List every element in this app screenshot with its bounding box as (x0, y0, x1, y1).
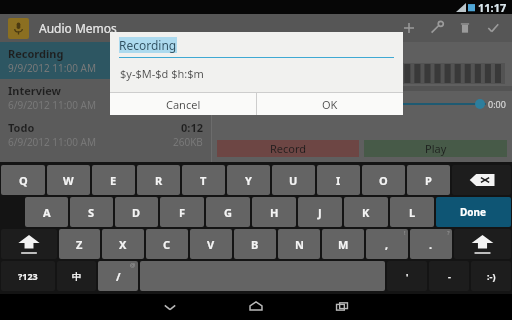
staticText: O (379, 173, 388, 188)
staticText: ' (406, 270, 409, 282)
button[interactable]: Home (243, 294, 269, 320)
button[interactable]: / (98, 261, 138, 291)
button[interactable]: Seek (218, 97, 485, 111)
button[interactable]: Delete (451, 14, 479, 42)
staticText: Q (19, 173, 28, 188)
staticText: V (207, 237, 215, 252)
button[interactable]: Accept (479, 14, 507, 42)
staticText: B (251, 237, 259, 252)
staticText: 9/9/2012 11:00 AM (8, 61, 96, 75)
button[interactable]: Record (217, 140, 359, 157)
button[interactable]: D (115, 197, 158, 227)
staticText: . (429, 237, 433, 252)
button[interactable]: Q (1, 165, 45, 195)
staticText: X (119, 237, 127, 252)
button[interactable]: T (182, 165, 225, 195)
staticText: I (336, 173, 341, 188)
staticText: 6/9/2012 11:00 AM (8, 135, 96, 149)
button[interactable]: . (410, 229, 452, 259)
button[interactable]: Hide keyboard (157, 294, 183, 320)
button[interactable]: P (407, 165, 450, 195)
staticText: ! (404, 229, 406, 237)
button[interactable]: Play (364, 140, 507, 157)
staticText: :-) (487, 270, 496, 282)
staticText: G (224, 205, 232, 220)
staticText: Play (425, 141, 447, 156)
staticText: Y (245, 173, 252, 188)
button[interactable]: J (298, 197, 342, 227)
staticText: 11:17 (478, 0, 507, 14)
button[interactable]: H (252, 197, 296, 227)
staticText: P (425, 173, 432, 188)
button[interactable]: N (278, 229, 320, 259)
staticText: 260KB (173, 135, 203, 149)
button[interactable]: Z (59, 229, 100, 259)
button[interactable]: OK (257, 93, 403, 115)
button[interactable]: E (92, 165, 135, 195)
staticText: U (289, 173, 298, 188)
staticText: 中 (72, 271, 81, 282)
staticText: J (318, 205, 322, 220)
button[interactable]: M (322, 229, 364, 259)
button[interactable]: O (362, 165, 405, 195)
button[interactable]: - (429, 261, 469, 291)
staticText: H (270, 205, 279, 220)
button[interactable]: F (160, 197, 204, 227)
button[interactable]: L (390, 197, 434, 227)
button[interactable]: App icon (8, 18, 29, 39)
button[interactable]: W (47, 165, 90, 195)
staticText: Record (270, 141, 307, 156)
button[interactable]: Y (227, 165, 270, 195)
staticText: Z (76, 237, 83, 252)
button[interactable]: , (366, 229, 408, 259)
button[interactable]: Add (395, 14, 423, 42)
staticText: Audio Memos (39, 20, 117, 36)
staticText: M (338, 237, 349, 252)
button[interactable]: Done (436, 197, 511, 227)
staticText: F (179, 205, 186, 220)
button[interactable]: ?123 (1, 261, 55, 291)
staticText: 6/9/2012 11:00 AM (8, 98, 96, 112)
staticText: N (295, 237, 304, 252)
button[interactable]: :-) (471, 261, 511, 291)
staticText: @ (130, 261, 136, 269)
button[interactable]: B (234, 229, 276, 259)
staticText: K (362, 205, 370, 220)
staticText: Recording (8, 46, 64, 61)
staticText: Todo (8, 120, 35, 135)
staticText: Recording (119, 37, 177, 53)
button[interactable]: C (146, 229, 188, 259)
button[interactable]: Cancel (110, 93, 256, 115)
staticText: - (448, 270, 451, 282)
staticText: S (88, 205, 95, 220)
button[interactable]: 中 (57, 261, 96, 291)
staticText: Interview (8, 83, 62, 98)
button[interactable]: Shift (454, 229, 511, 259)
staticText: L (409, 205, 416, 220)
button[interactable]: Settings (423, 14, 451, 42)
staticText: / (116, 269, 121, 284)
button[interactable]: Recents (329, 294, 355, 320)
button[interactable]: Backspace (452, 165, 511, 195)
staticText: D (132, 205, 141, 220)
button[interactable]: ' (387, 261, 427, 291)
staticText: W (63, 173, 74, 188)
button[interactable]: G (206, 197, 250, 227)
button[interactable]: I (317, 165, 360, 195)
button[interactable]: Recording (0, 42, 211, 79)
button[interactable]: V (190, 229, 232, 259)
button[interactable]: Shift (1, 229, 57, 259)
button[interactable]: K (344, 197, 388, 227)
staticText: E (110, 173, 117, 188)
button[interactable]: U (272, 165, 315, 195)
button[interactable]: S (70, 197, 113, 227)
button[interactable]: Interview (0, 79, 211, 116)
button[interactable]: X (102, 229, 144, 259)
button[interactable]: Todo (0, 116, 211, 153)
staticText: A (43, 205, 51, 220)
staticText: C (163, 237, 171, 252)
staticText: R (155, 173, 163, 188)
button[interactable]: R (137, 165, 180, 195)
button[interactable]: A (25, 197, 68, 227)
